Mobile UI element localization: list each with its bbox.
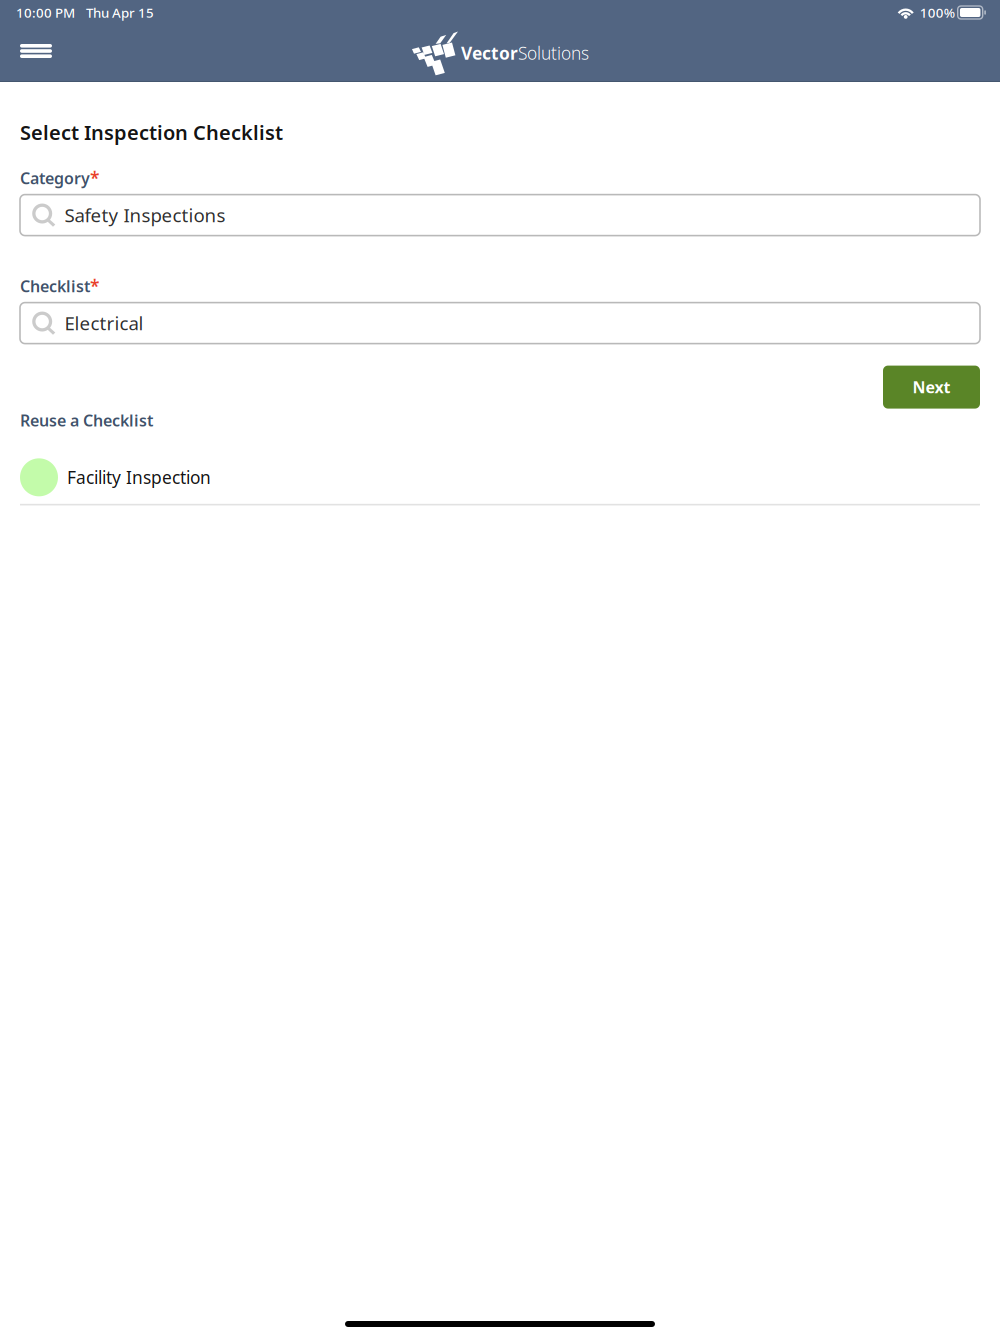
button[interactable]: Menu [0, 28, 72, 77]
staticText: Category [20, 167, 90, 189]
button[interactable]: Next [883, 366, 980, 409]
staticText: Reuse a Checklist [20, 410, 153, 431]
button[interactable]: Facility Inspection [20, 451, 980, 505]
staticText: Facility Inspection [67, 466, 211, 489]
staticText: Checklist [20, 275, 90, 297]
staticText: * [90, 275, 99, 298]
staticText: 10:00 PM [16, 4, 75, 21]
staticText: Safety Inspections [64, 203, 225, 227]
staticText: Solutions [518, 41, 589, 64]
staticText: 100% [920, 4, 955, 21]
staticText: Select Inspection Checklist [20, 119, 283, 146]
staticText: Electrical [64, 311, 143, 335]
staticText: Vector [461, 41, 518, 64]
button[interactable]: Electrical [20, 303, 980, 344]
staticText: Thu Apr 15 [86, 4, 154, 21]
staticText: * [90, 167, 99, 190]
staticText: Next [912, 376, 950, 398]
button[interactable]: Safety Inspections [20, 195, 980, 236]
